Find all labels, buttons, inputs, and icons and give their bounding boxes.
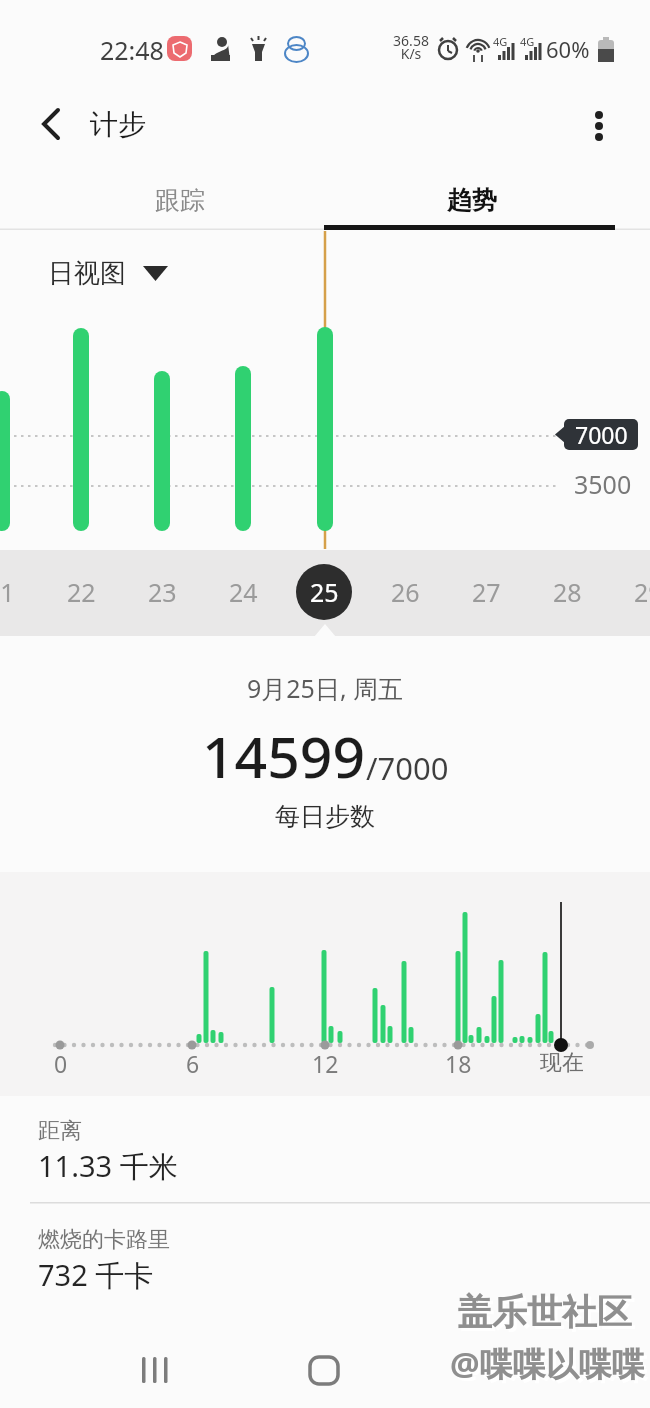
- button[interactable]: 26: [377, 564, 433, 620]
- staticText: 21: [0, 575, 15, 609]
- button[interactable]: 25: [296, 564, 352, 620]
- button[interactable]: [110, 1340, 200, 1400]
- staticText: 22:48: [100, 33, 164, 67]
- button[interactable]: 28: [539, 564, 595, 620]
- button[interactable]: 22: [53, 564, 109, 620]
- staticText: 计步: [90, 107, 146, 142]
- staticText: 盖乐世社区: [460, 1293, 635, 1337]
- staticText: 距离: [38, 1117, 82, 1145]
- button[interactable]: 21: [0, 564, 28, 620]
- staticText: 现在: [540, 1049, 584, 1077]
- staticText: 4G: [520, 34, 535, 49]
- staticText: 24: [229, 575, 258, 609]
- staticText: 每日步数: [275, 801, 375, 832]
- staticText: 4G: [493, 34, 508, 49]
- staticText: /7000: [366, 747, 449, 789]
- staticText: 22: [67, 575, 96, 609]
- staticText: 跟踪: [155, 185, 205, 216]
- button[interactable]: [450, 1340, 540, 1400]
- staticText: 23: [148, 575, 177, 609]
- staticText: 0: [54, 1048, 68, 1079]
- staticText: 732 千卡: [38, 1255, 154, 1295]
- staticText: 日视图: [48, 257, 126, 290]
- button[interactable]: 日视图: [40, 252, 180, 294]
- staticText: 7000: [575, 419, 628, 450]
- staticText: 趋势: [447, 185, 497, 216]
- button[interactable]: 24: [215, 564, 271, 620]
- button[interactable]: [280, 1340, 370, 1400]
- staticText: 盖乐世社区: [457, 1290, 632, 1334]
- staticText: 60%: [546, 34, 590, 64]
- staticText: 36.58 K/s: [393, 31, 429, 63]
- button[interactable]: 29: [620, 564, 650, 620]
- staticText: 11.33 千米: [38, 1146, 178, 1186]
- staticText: 9月25日, 周五: [247, 671, 404, 705]
- staticText: 燃烧的卡路里: [38, 1226, 170, 1254]
- staticText: @喋喋以喋喋: [453, 1344, 648, 1389]
- staticText: 25: [310, 575, 339, 609]
- staticText: 12: [312, 1048, 339, 1079]
- button[interactable]: 跟踪: [0, 170, 325, 230]
- staticText: 18: [445, 1048, 472, 1079]
- button[interactable]: 27: [458, 564, 514, 620]
- button[interactable]: [30, 100, 74, 148]
- staticText: 26: [391, 575, 420, 609]
- button[interactable]: [578, 100, 622, 148]
- button[interactable]: 23: [134, 564, 190, 620]
- staticText: 14599: [202, 717, 366, 795]
- staticText: 29: [634, 575, 650, 609]
- staticText: 27: [472, 575, 501, 609]
- staticText: 3500: [574, 467, 632, 501]
- staticText: 28: [553, 575, 582, 609]
- staticText: 6: [186, 1048, 200, 1079]
- button[interactable]: 趋势: [325, 170, 650, 230]
- staticText: @喋喋以喋喋: [450, 1341, 645, 1386]
